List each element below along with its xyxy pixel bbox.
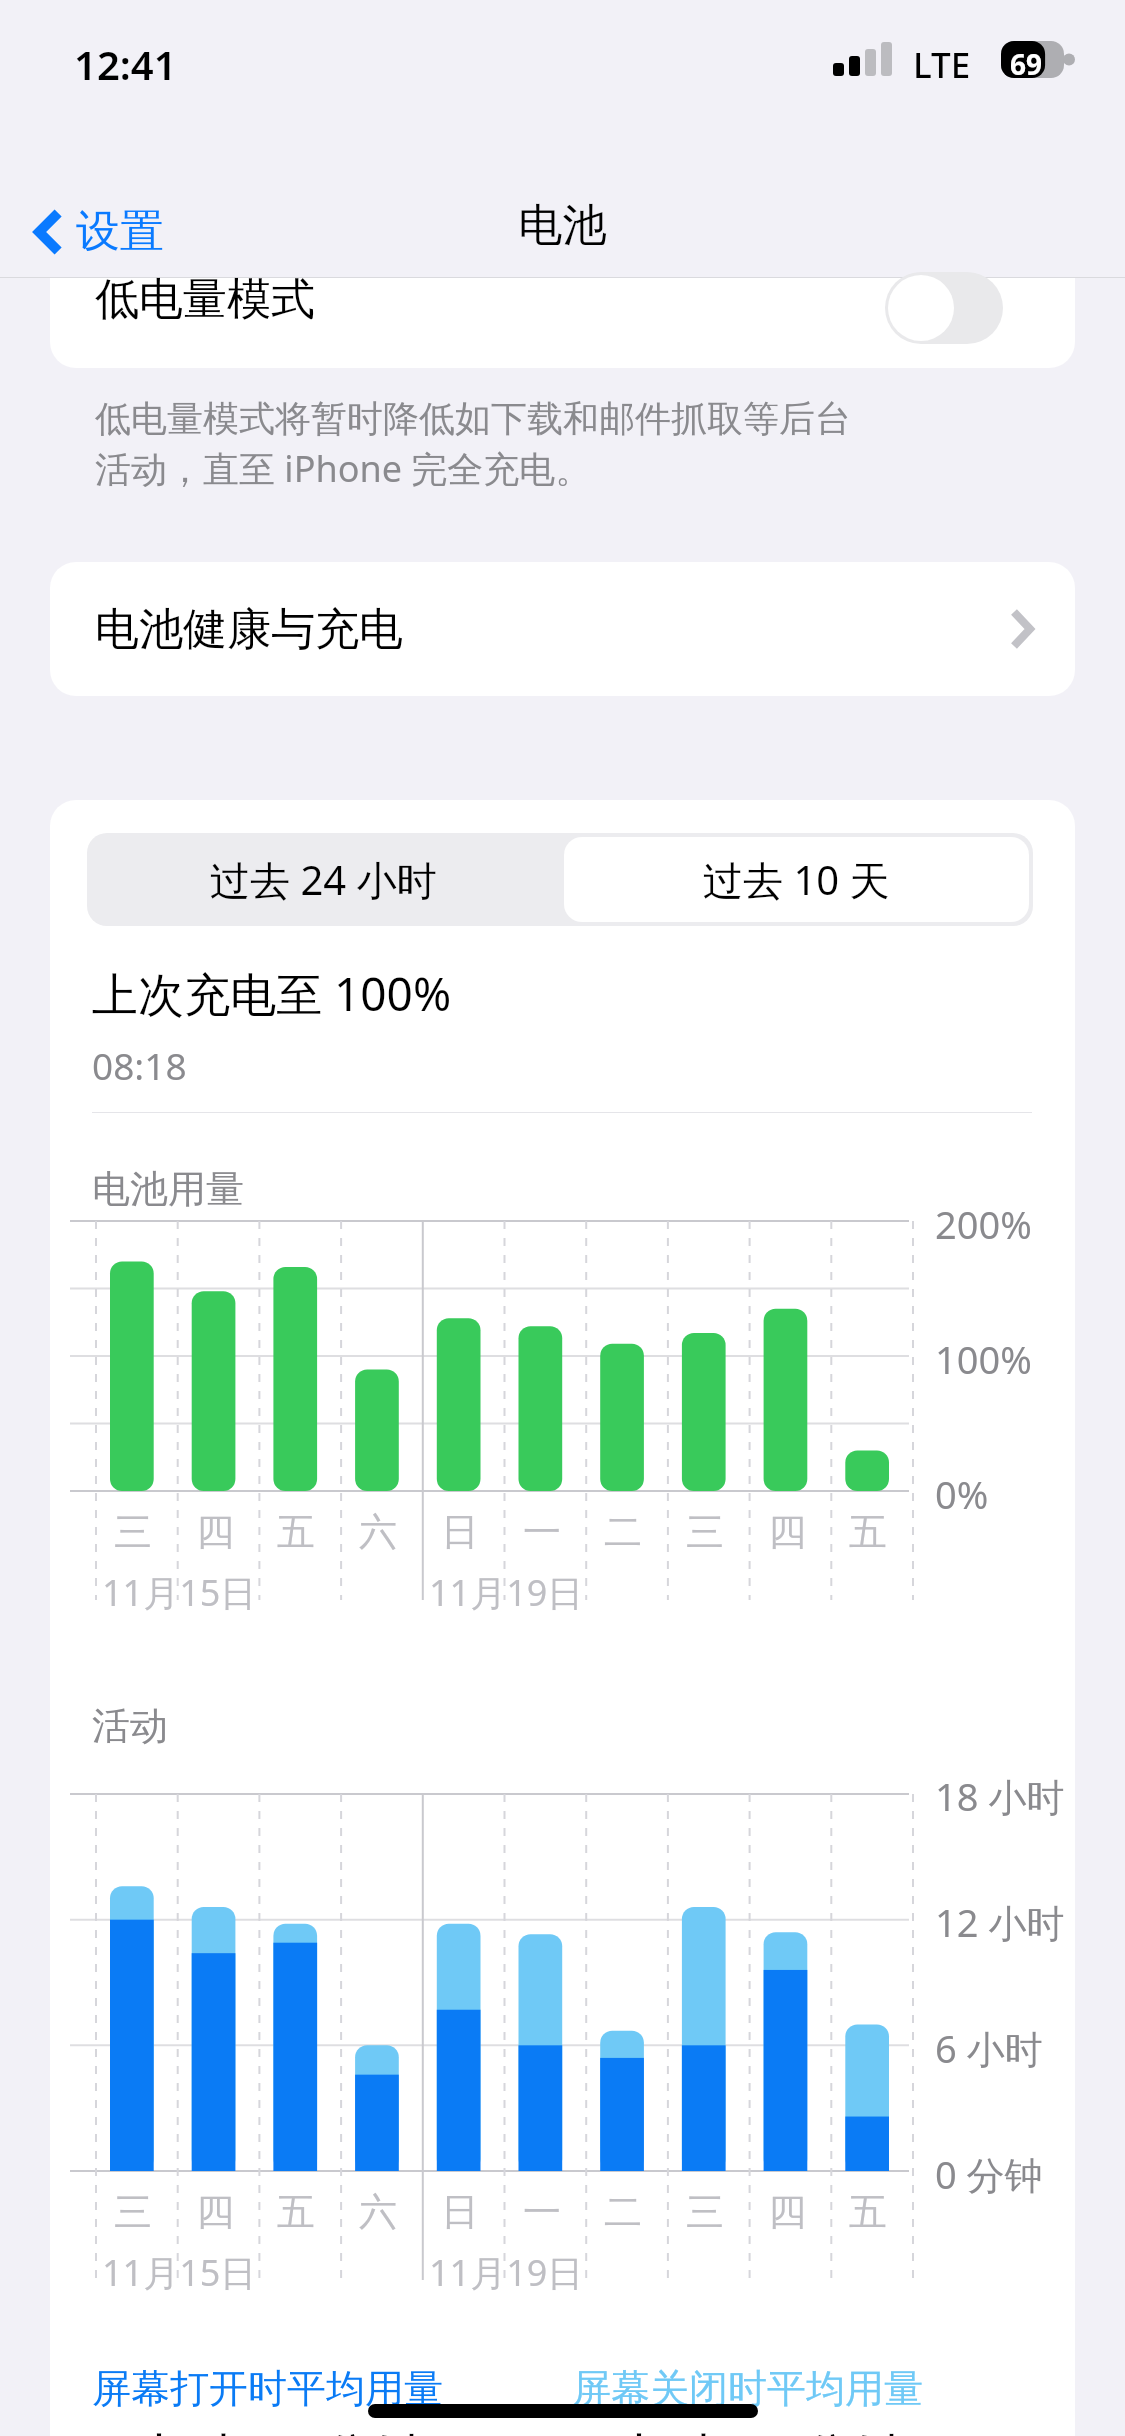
staticText: 0%	[935, 1468, 989, 1520]
button[interactable]: 过去 24 小时	[87, 833, 560, 926]
other: Back	[36, 209, 62, 255]
staticText: 低电量模式	[95, 272, 315, 327]
staticText: 四	[196, 1508, 234, 1556]
staticText: 上次充电至 100%	[92, 962, 452, 1025]
staticText: 200%	[935, 1198, 1032, 1250]
staticText: 过去 10 天	[703, 852, 890, 907]
staticText: 69	[1010, 45, 1043, 83]
staticText: 7 小时 11 分钟	[88, 2420, 426, 2436]
staticText: 低电量模式将暂时降低如下载和邮件抓取等后台 活动，直至 iPhone 完全充电。	[95, 396, 1055, 493]
staticText: 五	[277, 2188, 315, 2236]
staticText: 活动	[92, 1702, 168, 1750]
button[interactable]: 电池健康与充电	[50, 562, 1075, 696]
staticText: 11月15日	[102, 1568, 257, 1617]
button[interactable]: Back	[26, 196, 174, 267]
staticText: 6 小时	[935, 2022, 1043, 2074]
staticText: 六	[359, 1508, 397, 1556]
button[interactable]	[50, 278, 1075, 368]
staticText: 18 小时	[935, 1770, 1065, 1822]
staticText: 三	[686, 1508, 724, 1556]
button[interactable]: 过去 10 天	[564, 837, 1029, 922]
staticText: 一	[523, 2188, 561, 2236]
staticText: 屏幕打开时平均用量	[92, 2364, 443, 2413]
staticText: 六	[359, 2188, 397, 2236]
staticText: 电池	[0, 198, 1125, 253]
staticText: 100%	[935, 1333, 1032, 1385]
staticText: 四	[768, 1508, 806, 1556]
staticText: 屏幕关闭时平均用量	[572, 2364, 923, 2413]
staticText: 四	[768, 2188, 806, 2236]
staticText: 电池健康与充电	[95, 602, 403, 657]
staticText: 二	[604, 2188, 642, 2236]
staticText: 五	[849, 1508, 887, 1556]
staticText: 五	[277, 1508, 315, 1556]
staticText: 过去 24 小时	[210, 852, 437, 907]
staticText: 11月19日	[429, 2248, 584, 2297]
staticText: 日	[441, 2188, 479, 2236]
staticText: 11月15日	[102, 2248, 257, 2297]
staticText: 3 小时 32 分钟	[568, 2420, 906, 2436]
staticText: 12:41	[74, 37, 177, 91]
staticText: 12 小时	[935, 1896, 1065, 1948]
staticText: 电池用量	[92, 1165, 244, 1213]
staticText: 11月19日	[429, 1568, 584, 1617]
staticText: 五	[849, 2188, 887, 2236]
staticText: 一	[523, 1508, 561, 1556]
staticText: 四	[196, 2188, 234, 2236]
staticText: 三	[114, 2188, 152, 2236]
staticText: 08:18	[92, 1040, 187, 1090]
staticText: 日	[441, 1508, 479, 1556]
staticText: 三	[114, 1508, 152, 1556]
staticText: 二	[604, 1508, 642, 1556]
staticText: 0 分钟	[935, 2148, 1043, 2200]
staticText: LTE	[913, 41, 971, 89]
staticText: 设置	[76, 204, 164, 259]
staticText: 三	[686, 2188, 724, 2236]
